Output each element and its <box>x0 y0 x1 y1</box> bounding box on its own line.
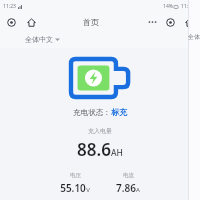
button[interactable]: Home <box>183 16 195 28</box>
staticText: 11:23 <box>3 3 16 10</box>
button[interactable]: Home <box>25 16 37 28</box>
button[interactable]: Charging status <box>68 56 132 99</box>
staticText: 88.6 <box>77 138 111 161</box>
button[interactable]: 全体中文 <box>24 34 61 45</box>
staticText: 标充 <box>111 107 127 117</box>
staticText: 电压 <box>70 172 81 179</box>
staticText: 电流 <box>123 172 134 179</box>
staticText: 55.10 <box>60 181 86 195</box>
button[interactable]: Target <box>5 16 17 28</box>
button[interactable]: 电压 <box>58 171 92 196</box>
staticText: A <box>136 186 140 194</box>
staticText: 7.86 <box>116 181 136 195</box>
button[interactable]: More options <box>146 16 158 28</box>
button[interactable]: 电流 <box>114 171 142 196</box>
staticText: V <box>86 186 90 194</box>
staticText: 11:23 <box>181 3 194 10</box>
staticText: 充电状态： <box>73 108 111 117</box>
staticText: 全体 <box>188 33 200 41</box>
staticText: AH <box>111 147 123 159</box>
staticText: 充入电量 <box>88 127 112 135</box>
staticText: 首页 <box>83 17 99 27</box>
staticText: 全体中文 <box>25 35 53 44</box>
button[interactable]: Target <box>164 16 176 28</box>
staticText: 14% <box>163 3 173 10</box>
